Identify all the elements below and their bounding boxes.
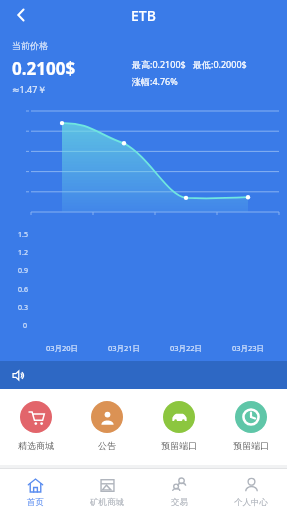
other: Announcement xyxy=(12,369,25,382)
staticText: 03月20日 xyxy=(31,343,93,353)
staticText: 当前价格 xyxy=(12,40,48,51)
staticText: 0.3 xyxy=(18,303,28,313)
staticText: 1.2 xyxy=(18,248,28,258)
button[interactable]: 首页 xyxy=(0,469,71,516)
staticText: 首页 xyxy=(27,497,44,508)
staticText: 矿机商城 xyxy=(90,497,124,508)
staticText: ≈1.47￥ xyxy=(12,83,47,95)
staticText: 精选商城 xyxy=(18,440,54,451)
staticText: 公告 xyxy=(98,440,116,451)
button[interactable]: Back xyxy=(6,0,36,30)
button[interactable]: Announcement xyxy=(0,361,287,389)
staticText: 03月22日 xyxy=(155,343,217,353)
button[interactable]: 个人中心 xyxy=(215,469,287,516)
button[interactable]: 预留端口 xyxy=(215,399,287,453)
staticText: 预留端口 xyxy=(161,440,197,451)
staticText: 交易 xyxy=(171,497,188,508)
staticText: 03月23日 xyxy=(217,343,279,353)
staticText: 1.5 xyxy=(18,230,28,240)
staticText: 0.9 xyxy=(18,266,28,276)
staticText: ETB xyxy=(131,6,156,25)
staticText: 03月21日 xyxy=(93,343,155,353)
staticText: 0 xyxy=(23,321,28,331)
staticText: 最低:0.2000$ xyxy=(193,58,247,70)
staticText: 最高:0.2100$ xyxy=(132,58,186,70)
staticText: 0.2100$ xyxy=(12,57,76,80)
staticText: 涨幅:4.76% xyxy=(132,75,178,87)
button[interactable]: 矿机商城 xyxy=(71,469,143,516)
staticText: 预留端口 xyxy=(233,440,269,451)
button[interactable]: 精选商城 xyxy=(0,399,71,453)
staticText: 0.6 xyxy=(18,285,28,295)
staticText: 个人中心 xyxy=(234,497,268,508)
button[interactable]: 交易 xyxy=(143,469,215,516)
button[interactable]: 预留端口 xyxy=(143,399,215,453)
button[interactable]: 公告 xyxy=(71,399,143,453)
